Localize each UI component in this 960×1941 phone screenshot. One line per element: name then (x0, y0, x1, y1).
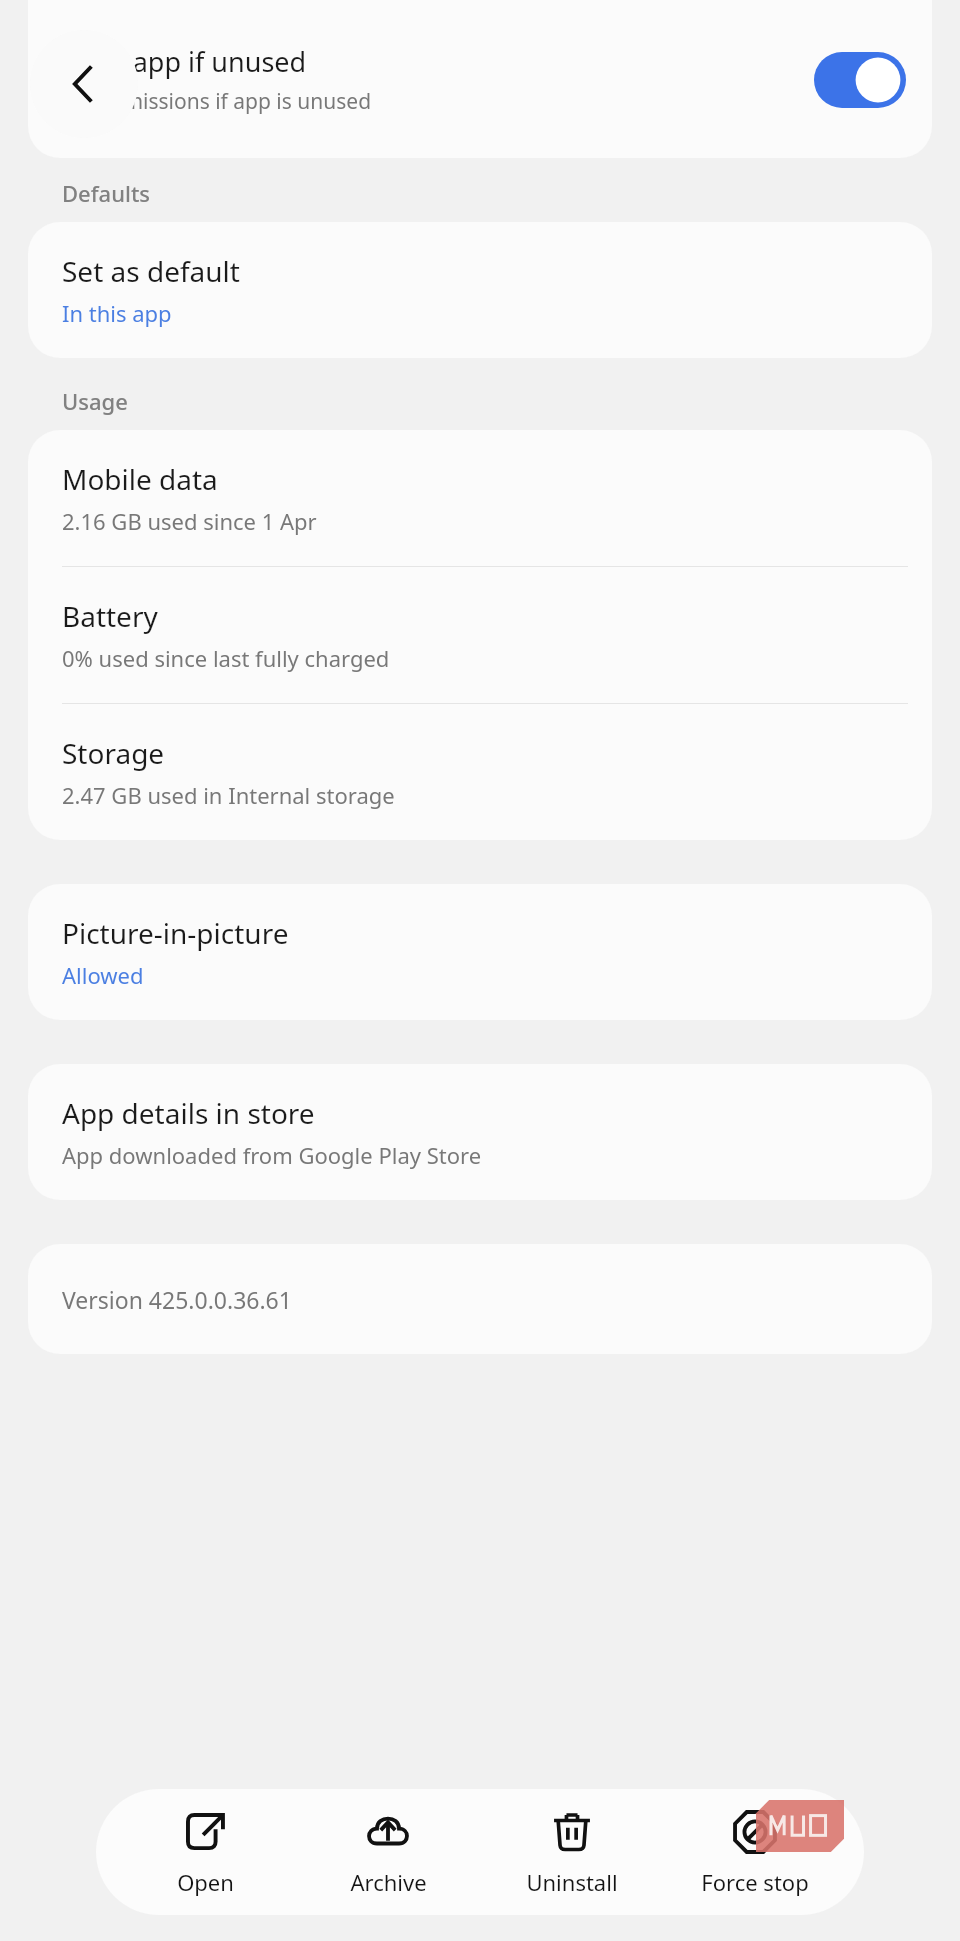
staticText: Mobile data (62, 460, 218, 498)
staticText: Picture-in-picture (62, 914, 289, 952)
staticText: Allowed (62, 960, 144, 990)
button[interactable]: Mobile data (28, 430, 932, 566)
button[interactable]: Back (30, 30, 138, 138)
staticText: 2.16 GB used since 1 Apr (62, 506, 317, 536)
staticText: App details in store (62, 1094, 315, 1132)
staticText: Uninstall (526, 1867, 618, 1897)
staticText: 2.47 GB used in Internal storage (62, 780, 395, 810)
staticText: ve permissions if app is unused (62, 87, 372, 116)
button[interactable]: Force stop (680, 1801, 830, 1903)
button[interactable]: Set as default (28, 222, 932, 358)
staticText: Force stop (701, 1867, 809, 1897)
button[interactable]: nage app if unused (28, 0, 932, 158)
button[interactable]: Uninstall (497, 1801, 647, 1903)
staticText: 0% used since last fully charged (62, 643, 390, 673)
button[interactable]: Storage (28, 704, 932, 840)
staticText: nage app if unused (62, 43, 307, 80)
button[interactable]: Open (130, 1801, 280, 1903)
staticText: Open (177, 1867, 234, 1897)
staticText: Set as default (62, 252, 240, 290)
button[interactable]: App details in store (28, 1064, 932, 1200)
button[interactable]: Battery (28, 567, 932, 703)
button[interactable]: Archive (313, 1801, 463, 1903)
button[interactable]: Version 425.0.0.36.61 (28, 1244, 932, 1354)
staticText: Storage (62, 734, 165, 772)
staticText: In this app (62, 298, 172, 328)
staticText: Defaults (62, 178, 151, 208)
button[interactable]: Manage app if unused (814, 52, 906, 108)
button[interactable]: Picture-in-picture (28, 884, 932, 1020)
staticText: Usage (62, 386, 128, 416)
staticText: App downloaded from Google Play Store (62, 1140, 482, 1170)
staticText: Battery (62, 597, 158, 635)
staticText: Version 425.0.0.36.61 (62, 1284, 292, 1315)
staticText: Archive (350, 1867, 427, 1897)
